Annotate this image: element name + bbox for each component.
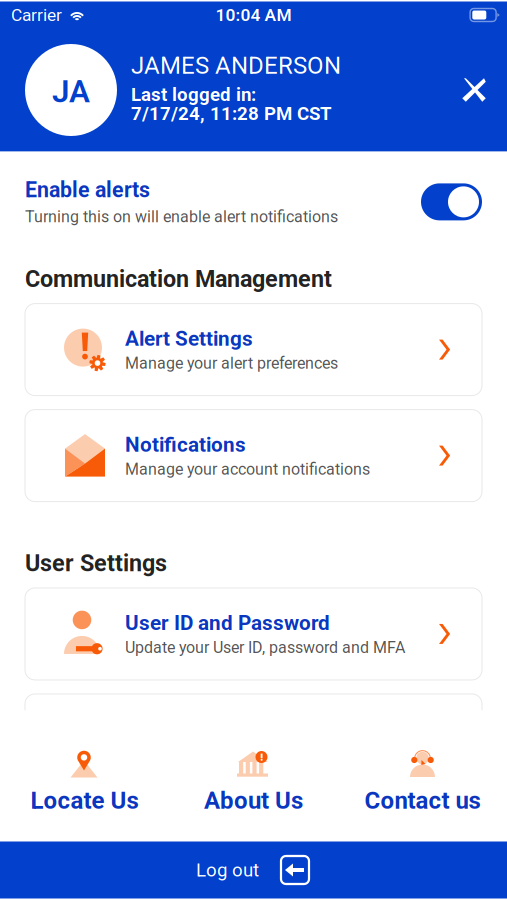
button[interactable]: Log out xyxy=(0,841,507,898)
staticText: Last logged in: xyxy=(131,84,256,106)
button[interactable]: Alert Settings xyxy=(25,304,482,396)
staticText: Locate Us xyxy=(30,786,138,815)
staticText: Turning this on will enable alert notifi… xyxy=(25,207,338,226)
staticText: User Settings xyxy=(25,550,167,577)
staticText: Alert Settings xyxy=(125,327,253,351)
staticText: Log out xyxy=(196,859,259,881)
staticText: Contact us xyxy=(364,786,480,815)
staticText: Notifications xyxy=(125,433,246,457)
staticText: About Us xyxy=(204,786,303,815)
button[interactable]: Enable alerts xyxy=(421,183,482,220)
staticText: Enable alerts xyxy=(25,177,150,202)
staticText: JA xyxy=(52,73,90,110)
button[interactable]: Locate Us xyxy=(0,710,169,841)
button[interactable]: Security xyxy=(25,694,482,786)
button[interactable]: User ID and Password xyxy=(25,588,482,680)
staticText: Manage your security settings xyxy=(125,744,336,763)
button[interactable]: Contact us xyxy=(338,710,507,841)
button[interactable]: Notifications xyxy=(25,410,482,502)
staticText: 10:04 AM xyxy=(215,5,291,25)
staticText: Manage your alert preferences xyxy=(125,354,338,373)
button[interactable]: About Us xyxy=(169,710,338,841)
staticText: Update your User ID, password and MFA xyxy=(125,638,405,657)
staticText: 7/17/24, 11:28 PM CST xyxy=(131,103,332,124)
staticText: Carrier xyxy=(11,5,62,25)
staticText: Communication Management xyxy=(25,265,332,292)
staticText: JAMES ANDERSON xyxy=(131,52,341,80)
staticText: User ID and Password xyxy=(125,611,330,635)
staticText: Manage your account notifications xyxy=(125,460,370,479)
button[interactable]: Close xyxy=(452,66,507,114)
